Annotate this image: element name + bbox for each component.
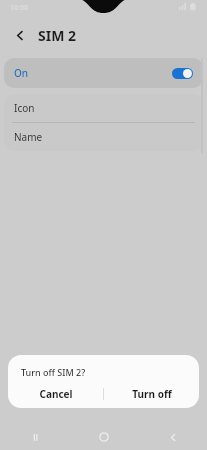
button[interactable]: On <box>4 58 203 88</box>
staticText: On <box>14 66 29 80</box>
button[interactable]: Recents <box>20 424 50 450</box>
staticText: Cancel <box>39 387 73 401</box>
staticText: Turn off SIM 2? <box>21 366 86 378</box>
button[interactable]: Icon <box>4 94 203 122</box>
button[interactable]: Turn off <box>104 384 199 404</box>
staticText: Name <box>14 130 43 144</box>
button[interactable]: Cancel <box>8 384 103 404</box>
staticText: Turn off <box>132 387 172 401</box>
button[interactable]: Home <box>89 424 119 450</box>
button[interactable]: Back <box>158 424 188 450</box>
staticText: 10:00 <box>10 3 28 13</box>
button[interactable]: Back <box>10 25 30 45</box>
button[interactable]: Name <box>4 123 203 151</box>
staticText: Icon <box>14 101 35 115</box>
staticText: SIM 2 <box>38 26 77 45</box>
